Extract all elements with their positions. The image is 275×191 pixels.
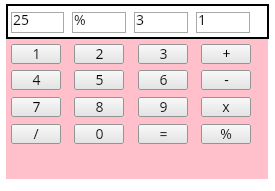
button[interactable]: Three: [138, 44, 188, 64]
staticText: x: [222, 97, 230, 116]
button[interactable]: Four: [11, 70, 61, 90]
staticText: +: [222, 44, 231, 63]
staticText: 8: [95, 97, 104, 116]
button[interactable]: Percent: [201, 124, 251, 144]
button[interactable]: Seven: [11, 97, 61, 117]
staticText: 1: [32, 44, 41, 63]
button[interactable]: 1: [198, 12, 248, 33]
button[interactable]: Two: [74, 44, 124, 64]
staticText: 1: [198, 10, 207, 29]
button[interactable]: Plus: [201, 44, 251, 64]
staticText: %: [220, 124, 232, 143]
staticText: 25: [13, 10, 30, 29]
staticText: 3: [159, 44, 168, 63]
staticText: 4: [32, 70, 41, 89]
button[interactable]: Multiply: [201, 97, 251, 117]
staticText: =: [159, 124, 168, 143]
button[interactable]: %: [74, 12, 124, 33]
button[interactable]: 3: [136, 12, 186, 33]
staticText: 7: [32, 97, 41, 116]
button[interactable]: Nine: [138, 97, 188, 117]
button[interactable]: Divide: [11, 124, 61, 144]
button[interactable]: Zero: [74, 124, 124, 144]
staticText: 2: [95, 44, 104, 63]
staticText: -: [224, 70, 229, 89]
button[interactable]: 25: [13, 12, 62, 33]
button[interactable]: One: [11, 44, 61, 64]
staticText: 3: [136, 10, 145, 29]
button[interactable]: Six: [138, 70, 188, 90]
staticText: 6: [159, 70, 168, 89]
staticText: 9: [159, 97, 168, 116]
button[interactable]: Five: [74, 70, 124, 90]
button[interactable]: Minus: [201, 70, 251, 90]
staticText: %: [74, 10, 86, 29]
button[interactable]: Eight: [74, 97, 124, 117]
button[interactable]: Equals: [138, 124, 188, 144]
staticText: 5: [95, 70, 104, 89]
staticText: 0: [95, 124, 104, 143]
staticText: /: [33, 124, 39, 143]
